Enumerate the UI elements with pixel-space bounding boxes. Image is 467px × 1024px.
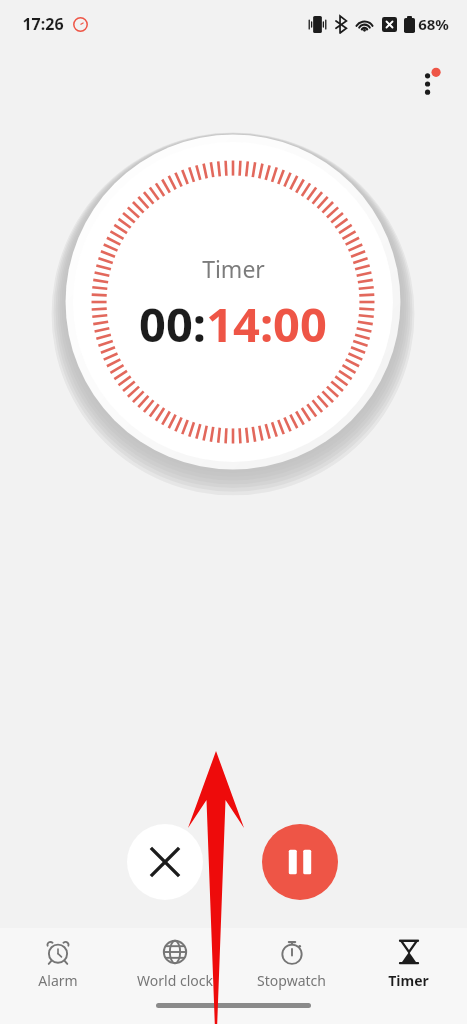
- staticText: Timer: [388, 971, 429, 990]
- button[interactable]: Timer: [350, 928, 467, 990]
- button[interactable]: Alarm: [0, 928, 116, 990]
- staticText: Alarm: [38, 971, 78, 990]
- staticText: 68%: [418, 14, 449, 34]
- staticText: 00:: [139, 292, 206, 356]
- button[interactable]: Cancel timer: [127, 824, 203, 900]
- button[interactable]: More options: [405, 60, 453, 108]
- button[interactable]: Stopwatch: [233, 928, 350, 990]
- button[interactable]: Pause timer: [262, 824, 338, 900]
- staticText: Timer: [202, 253, 265, 284]
- staticText: Stopwatch: [257, 971, 326, 990]
- button[interactable]: World clock: [116, 928, 233, 990]
- staticText: World clock: [137, 971, 213, 990]
- staticText: 17:26: [22, 13, 64, 35]
- staticText: 14:00: [206, 292, 327, 356]
